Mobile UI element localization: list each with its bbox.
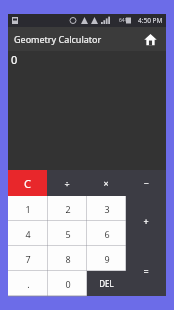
staticText: +: [143, 215, 149, 227]
staticText: 4:50 PM: [138, 16, 163, 25]
staticText: =: [143, 265, 149, 277]
button[interactable]: +: [126, 196, 166, 246]
staticText: ÷: [64, 177, 70, 189]
staticText: 0: [65, 278, 71, 290]
staticText: 7: [25, 253, 31, 265]
button[interactable]: 0: [48, 271, 87, 296]
staticText: ×: [103, 177, 109, 189]
button[interactable]: 9: [87, 246, 126, 271]
button[interactable]: Home: [140, 29, 160, 49]
button[interactable]: 2: [48, 196, 87, 221]
button[interactable]: 8: [48, 246, 87, 271]
staticText: 8: [65, 253, 71, 265]
button[interactable]: 4: [8, 221, 48, 246]
staticText: 6: [104, 228, 110, 240]
staticText: 0: [11, 52, 18, 67]
staticText: 5: [65, 228, 71, 240]
staticText: C: [24, 176, 31, 191]
staticText: 3: [104, 203, 110, 215]
button[interactable]: ÷: [47, 170, 86, 196]
button[interactable]: −: [126, 170, 166, 196]
button[interactable]: 3: [87, 196, 126, 221]
staticText: Geometry Calculator: [14, 33, 102, 45]
button[interactable]: .: [8, 271, 48, 296]
button[interactable]: 6: [87, 221, 126, 246]
staticText: 2: [65, 203, 71, 215]
staticText: 64%: [119, 17, 129, 24]
staticText: 9: [104, 253, 110, 265]
button[interactable]: ×: [86, 170, 126, 196]
staticText: .: [27, 278, 30, 290]
button[interactable]: 5: [48, 221, 87, 246]
button[interactable]: 7: [8, 246, 48, 271]
button[interactable]: =: [126, 246, 166, 296]
staticText: 1: [25, 203, 31, 215]
staticText: −: [143, 177, 149, 189]
button[interactable]: C: [8, 170, 47, 196]
staticText: DEL: [99, 278, 114, 289]
button[interactable]: DEL: [87, 271, 126, 296]
button[interactable]: 1: [8, 196, 48, 221]
staticText: 4: [25, 228, 31, 240]
